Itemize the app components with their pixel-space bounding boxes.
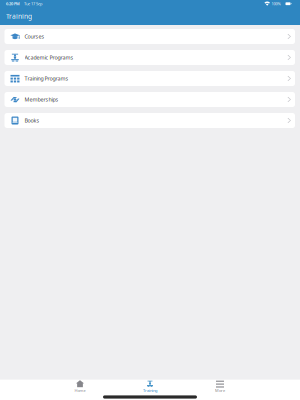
staticText: Memberships — [24, 96, 58, 103]
staticText: More — [215, 388, 225, 393]
staticText: Training Programs — [24, 75, 68, 82]
button[interactable]: More — [185, 380, 255, 393]
staticText: Courses — [24, 33, 44, 40]
staticText: Training — [143, 388, 157, 393]
button[interactable]: Training Programs — [4, 71, 295, 86]
button[interactable]: Training — [115, 380, 185, 393]
staticText: Home — [74, 388, 85, 393]
staticText: Books — [24, 117, 39, 124]
button[interactable]: Academic Programs — [4, 50, 295, 65]
staticText: Academic Programs — [24, 54, 73, 61]
button[interactable]: Memberships — [4, 92, 295, 107]
staticText: 100% — [271, 1, 280, 6]
staticText: 6:20 PM — [6, 1, 20, 6]
staticText: Tue 17 Sep — [24, 1, 42, 6]
button[interactable]: Courses — [4, 29, 295, 44]
button[interactable]: Books — [4, 113, 295, 128]
button[interactable]: Home — [45, 380, 115, 393]
staticText: Training — [6, 12, 32, 21]
